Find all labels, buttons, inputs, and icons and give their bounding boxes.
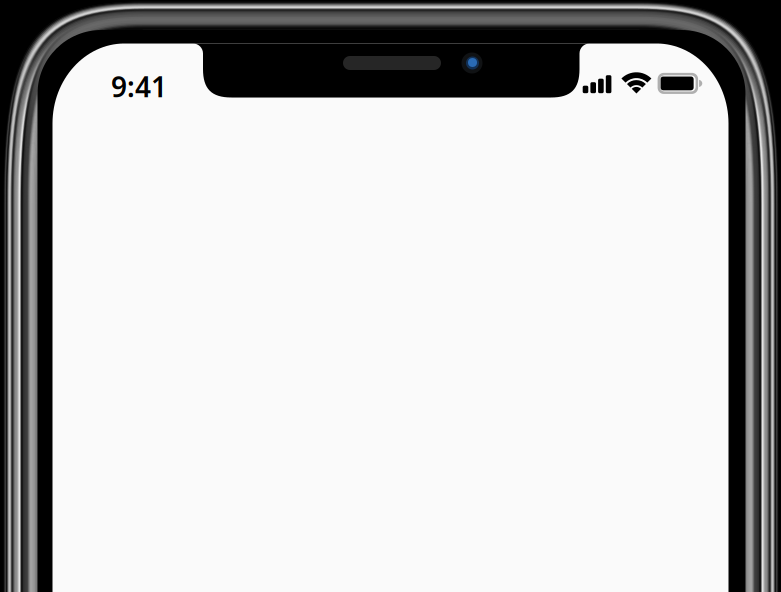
staticText: 9:41 — [111, 68, 167, 105]
